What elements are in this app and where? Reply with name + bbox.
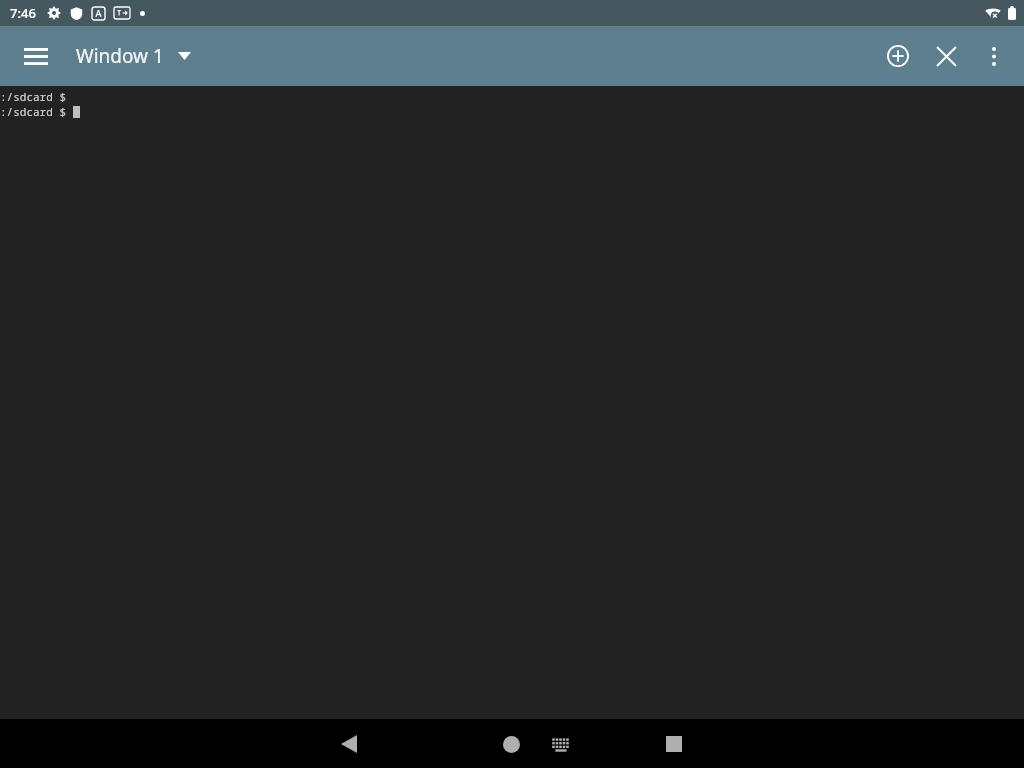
button[interactable]: Switch keyboard [539, 722, 583, 766]
button[interactable]: New session [874, 32, 922, 80]
button[interactable]: Recent apps [650, 720, 698, 768]
button[interactable]: Close session [922, 32, 970, 80]
staticText: Window 1 [76, 43, 164, 69]
staticText: 7:46 [10, 4, 36, 22]
staticText: :/sdcard $ [0, 104, 73, 119]
button[interactable]: Open navigation drawer [12, 32, 60, 80]
staticText: :/sdcard $ [0, 89, 66, 104]
button[interactable]: :/sdcard $ [0, 86, 1024, 719]
button[interactable]: Back [325, 720, 373, 768]
button[interactable]: More options [970, 32, 1018, 80]
button[interactable]: Window 1 [76, 30, 191, 82]
button[interactable]: Home [487, 720, 535, 768]
